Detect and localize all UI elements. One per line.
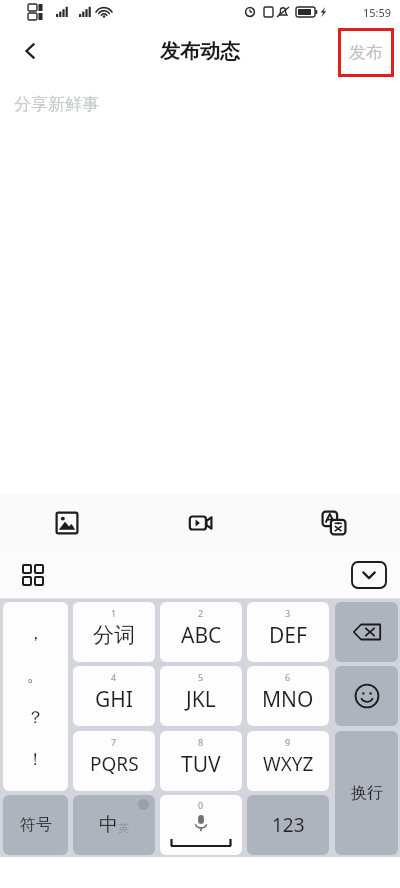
staticText: 2 [198, 607, 204, 619]
button[interactable]: 发布 [341, 31, 391, 74]
button[interactable]: 中 [73, 795, 155, 855]
button[interactable]: 返回 [8, 29, 52, 73]
staticText: JKL [186, 685, 216, 714]
button[interactable]: 符号 [3, 795, 68, 855]
staticText: 符号 [20, 815, 52, 835]
button[interactable]: 空格 [160, 795, 242, 855]
staticText: 中 [99, 813, 118, 837]
staticText: 换行 [351, 783, 383, 803]
button[interactable]: 4 [73, 666, 155, 726]
staticText: DEF [269, 621, 307, 650]
staticText: 8 [198, 736, 204, 748]
staticText: 123 [272, 812, 305, 838]
button[interactable]: 视频 [134, 495, 267, 551]
staticText: ？ [27, 707, 44, 728]
staticText: GHI [95, 685, 133, 714]
staticText: TUV [181, 750, 221, 779]
staticText: 6 [285, 671, 291, 683]
button[interactable]: 翻译 [267, 495, 400, 551]
staticText: 15:59 [363, 5, 392, 20]
button[interactable]: 删除 [335, 602, 398, 662]
button[interactable]: 3 [247, 602, 329, 662]
button[interactable]: 换行 [335, 731, 398, 855]
staticText: 分词 [93, 622, 135, 648]
staticText: 9 [285, 736, 291, 748]
staticText: ！ [27, 749, 44, 770]
staticText: 3 [285, 607, 291, 619]
staticText: 5 [198, 671, 204, 683]
staticText: 发布动态 [160, 39, 240, 64]
button[interactable]: 6 [247, 666, 329, 726]
button[interactable]: 2 [160, 602, 242, 662]
staticText: 发布 [349, 42, 383, 63]
staticText: 英 [118, 821, 129, 835]
staticText: 7 [111, 736, 117, 748]
staticText: 分享新鲜事 [14, 94, 99, 115]
button[interactable]: 表情 [335, 666, 398, 726]
staticText: 1 [111, 607, 117, 619]
button[interactable]: 123 [247, 795, 329, 855]
staticText: 4 [111, 671, 117, 683]
button[interactable]: 7 [73, 731, 155, 791]
staticText: WXYZ [263, 751, 314, 777]
staticText: 0 [198, 799, 204, 811]
staticText: PQRS [90, 751, 139, 777]
button[interactable]: 键盘菜单 [14, 556, 52, 594]
button[interactable]: ， [3, 602, 68, 791]
button[interactable]: 5 [160, 666, 242, 726]
button[interactable]: 8 [160, 731, 242, 791]
button[interactable]: 图片 [0, 495, 134, 551]
button[interactable]: 9 [247, 731, 329, 791]
button[interactable]: 1 [73, 602, 155, 662]
staticText: 。 [27, 665, 44, 686]
staticText: ， [27, 623, 44, 644]
staticText: ABC [181, 621, 222, 650]
button[interactable]: 收起键盘 [352, 562, 386, 588]
staticText: MNO [262, 685, 314, 714]
